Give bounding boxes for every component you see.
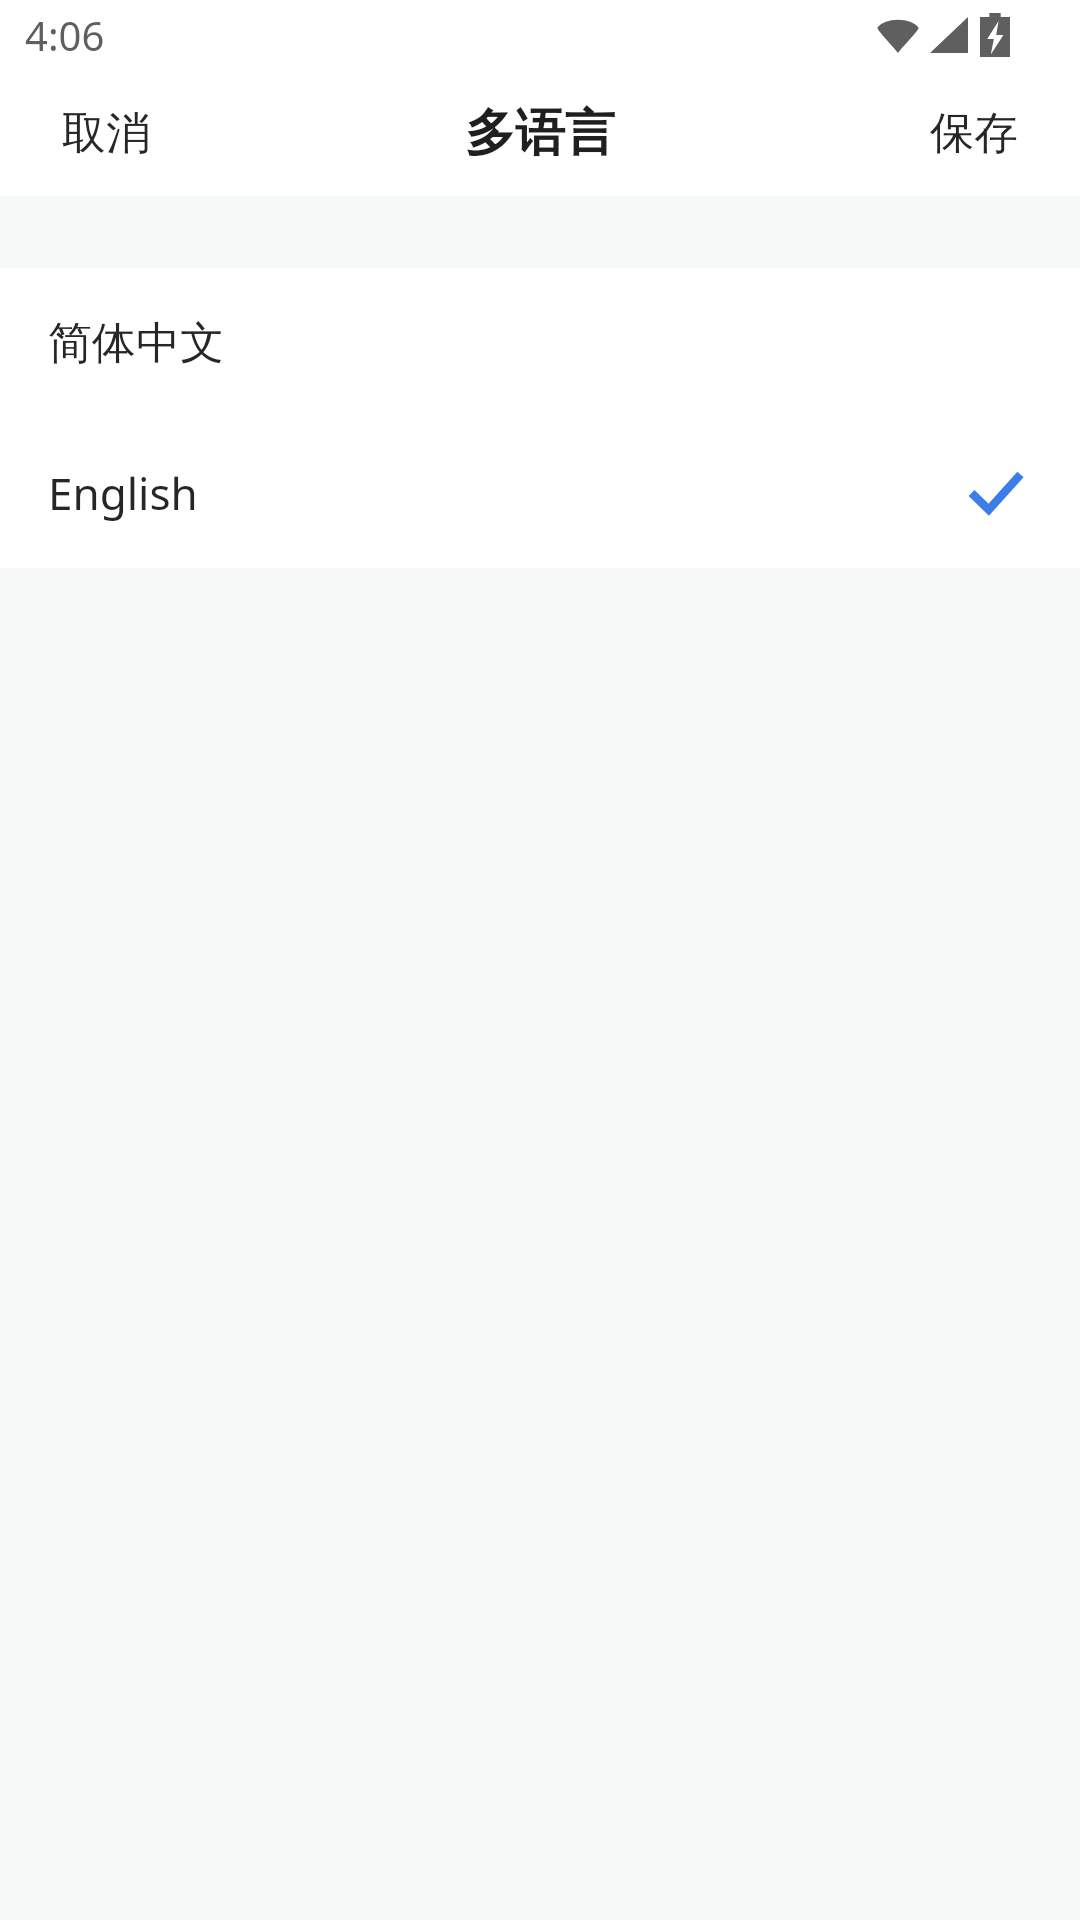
button[interactable]: 取消 [0,70,190,196]
staticText: 保存 [930,106,1018,161]
staticText: 多语言 [465,102,615,165]
staticText: 简体中文 [48,316,1022,371]
staticText: English [48,463,970,523]
button[interactable]: 简体中文 [0,268,1080,418]
button[interactable]: English [0,418,1080,568]
staticText: 4:06 [25,8,105,62]
staticText: 取消 [62,106,150,161]
button[interactable]: 保存 [890,70,1080,196]
other: Selected [970,472,1022,514]
